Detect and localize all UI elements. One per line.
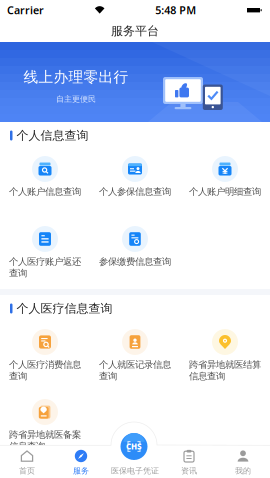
staticText: 个人账户明细查询: [189, 186, 261, 197]
staticText: 首页: [19, 466, 35, 476]
button[interactable]: 个人参保信息查询: [90, 149, 180, 219]
staticText: 个人医疗账户返还查询: [9, 256, 81, 279]
staticText: 自主更便民: [56, 94, 96, 104]
button[interactable]: 个人医疗消费信息查询: [0, 322, 90, 392]
staticText: 跨省异地就医结算信息查询: [189, 359, 261, 382]
button[interactable]: 医保电子凭证: [120, 433, 147, 460]
button[interactable]: 跨省异地就医备案信息查询: [0, 392, 90, 462]
staticText: 医保电子凭证: [111, 466, 159, 476]
button[interactable]: 首页: [0, 445, 54, 478]
staticText: 个人医疗消费信息查询: [9, 359, 81, 382]
staticText: 参保缴费信息查询: [99, 256, 171, 267]
button[interactable]: 个人账户信息查询: [0, 149, 90, 219]
button[interactable]: 服务: [54, 445, 108, 478]
staticText: 服务: [73, 466, 89, 476]
staticText: 个人医疗信息查询: [16, 301, 112, 316]
staticText: CHS: [126, 441, 142, 452]
staticText: 个人就医记录信息查询: [99, 359, 171, 382]
staticText: 个人账户信息查询: [9, 186, 81, 197]
button[interactable]: 我的: [216, 445, 270, 478]
staticText: 个人信息查询: [16, 128, 88, 143]
staticText: 跨省异地就医备案信息查询: [9, 429, 81, 452]
staticText: Carrier: [7, 3, 44, 17]
button[interactable]: 参保缴费信息查询: [90, 219, 180, 289]
staticText: 个人参保信息查询: [99, 186, 171, 197]
staticText: 线上办理零出行: [23, 68, 128, 86]
button[interactable]: 个人医疗账户返还查询: [0, 219, 90, 289]
button[interactable]: 个人就医记录信息查询: [90, 322, 180, 392]
button[interactable]: 个人账户明细查询: [180, 149, 270, 219]
button[interactable]: 跨省异地就医结算信息查询: [180, 322, 270, 392]
button[interactable]: 医保电子凭证 tab: [108, 445, 162, 478]
staticText: 5:48 PM: [155, 3, 196, 17]
staticText: 服务平台: [111, 24, 159, 38]
staticText: 资讯: [181, 466, 197, 476]
button[interactable]: 资讯: [162, 445, 216, 478]
staticText: 我的: [235, 466, 251, 476]
